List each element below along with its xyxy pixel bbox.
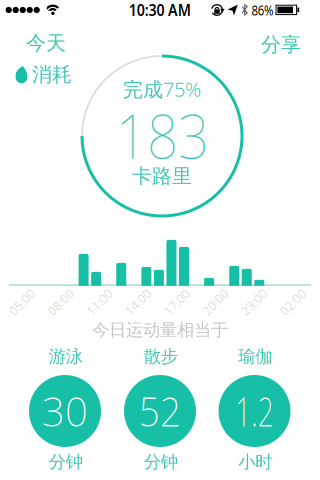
- staticText: 完成75%: [123, 76, 201, 102]
- staticText: 消耗: [32, 62, 72, 87]
- staticText: 今日运动量相当于: [92, 319, 228, 341]
- staticText: 02:00: [277, 294, 308, 310]
- staticText: 20:00: [200, 294, 231, 310]
- staticText: 183: [110, 94, 215, 176]
- staticText: 10:30 AM: [125, 0, 195, 20]
- staticText: 86%: [248, 0, 276, 20]
- staticText: 小时: [238, 451, 272, 473]
- staticText: 23:00: [239, 294, 270, 310]
- button[interactable]: 消耗: [15, 62, 72, 87]
- staticText: 分钟: [144, 451, 178, 473]
- staticText: 30: [42, 384, 88, 437]
- button[interactable]: 今天: [26, 31, 66, 55]
- staticText: 散步: [144, 346, 178, 367]
- staticText: 14:00: [123, 294, 154, 310]
- staticText: 游泳: [49, 346, 83, 367]
- staticText: 11:00: [84, 294, 115, 310]
- staticText: 今天: [26, 31, 66, 55]
- staticText: 分享: [261, 32, 301, 57]
- staticText: 1.2: [227, 384, 282, 437]
- staticText: 分钟: [49, 451, 83, 473]
- staticText: 08:00: [45, 294, 76, 310]
- staticText: 05:00: [6, 294, 37, 310]
- staticText: 17:00: [161, 294, 192, 310]
- staticText: 瑜伽: [238, 346, 272, 367]
- button[interactable]: 分享: [261, 32, 301, 57]
- staticText: 52: [137, 384, 183, 437]
- staticText: 卡路里: [132, 164, 192, 188]
